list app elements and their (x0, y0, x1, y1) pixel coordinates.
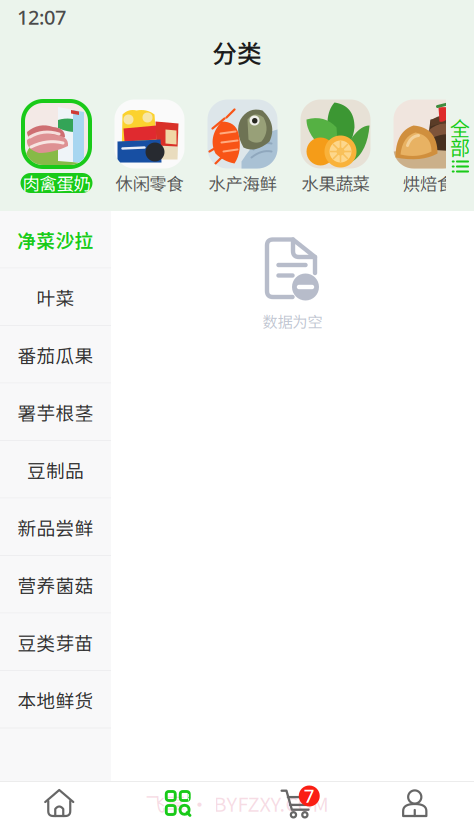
staticText: 豆类芽苗 (17, 629, 93, 656)
button[interactable]: 休闲零食 (103, 70, 196, 211)
staticText: 12:07 (17, 4, 66, 30)
button[interactable]: 净菜沙拉 (0, 211, 111, 268)
staticText: 数据为空 (262, 310, 322, 332)
button[interactable]: 烘焙食 (382, 70, 474, 211)
staticText: 本地鲜货 (17, 686, 93, 713)
button[interactable]: 分类 (118, 781, 237, 825)
button[interactable]: 豆制品 (0, 441, 111, 498)
staticText: 7 (304, 783, 315, 808)
staticText: 营养菌菇 (17, 571, 93, 598)
staticText: 豆制品 (27, 456, 84, 483)
staticText: 分类 (212, 34, 262, 70)
staticText: 净菜沙拉 (17, 226, 93, 253)
staticText: 肉禽蛋奶 (22, 170, 90, 196)
button[interactable]: 我的 (355, 781, 474, 825)
staticText: 飞享 · BYFZXY.COM (145, 788, 328, 817)
staticText: 番茄瓜果 (17, 341, 93, 368)
staticText: 部 (450, 132, 470, 161)
staticText: 全 (450, 113, 470, 142)
button[interactable]: 本地鲜货 (0, 671, 111, 728)
button[interactable]: 肉禽蛋奶 (10, 70, 103, 211)
staticText: 烘焙食 (403, 170, 454, 196)
staticText: 新品尝鲜 (17, 514, 93, 541)
button[interactable]: 叶菜 (0, 268, 111, 326)
button[interactable]: 水果蔬菜 (289, 70, 382, 211)
button[interactable]: 署芋根茎 (0, 383, 111, 441)
staticText: 休闲零食 (115, 170, 183, 196)
button[interactable]: 水产海鲜 (196, 70, 289, 211)
button[interactable]: 番茄瓜果 (0, 326, 111, 383)
staticText: 水果蔬菜 (301, 170, 369, 196)
button[interactable]: 购物车 (237, 781, 355, 825)
button[interactable]: 首页 (0, 781, 118, 825)
button[interactable]: 营养菌菇 (0, 556, 111, 613)
staticText: 叶菜 (36, 284, 74, 311)
button[interactable]: 豆类芽苗 (0, 613, 111, 671)
button[interactable]: 全部 (446, 70, 474, 211)
button[interactable]: 新品尝鲜 (0, 498, 111, 556)
staticText: 署芋根茎 (17, 399, 93, 426)
staticText: 水产海鲜 (208, 170, 276, 196)
